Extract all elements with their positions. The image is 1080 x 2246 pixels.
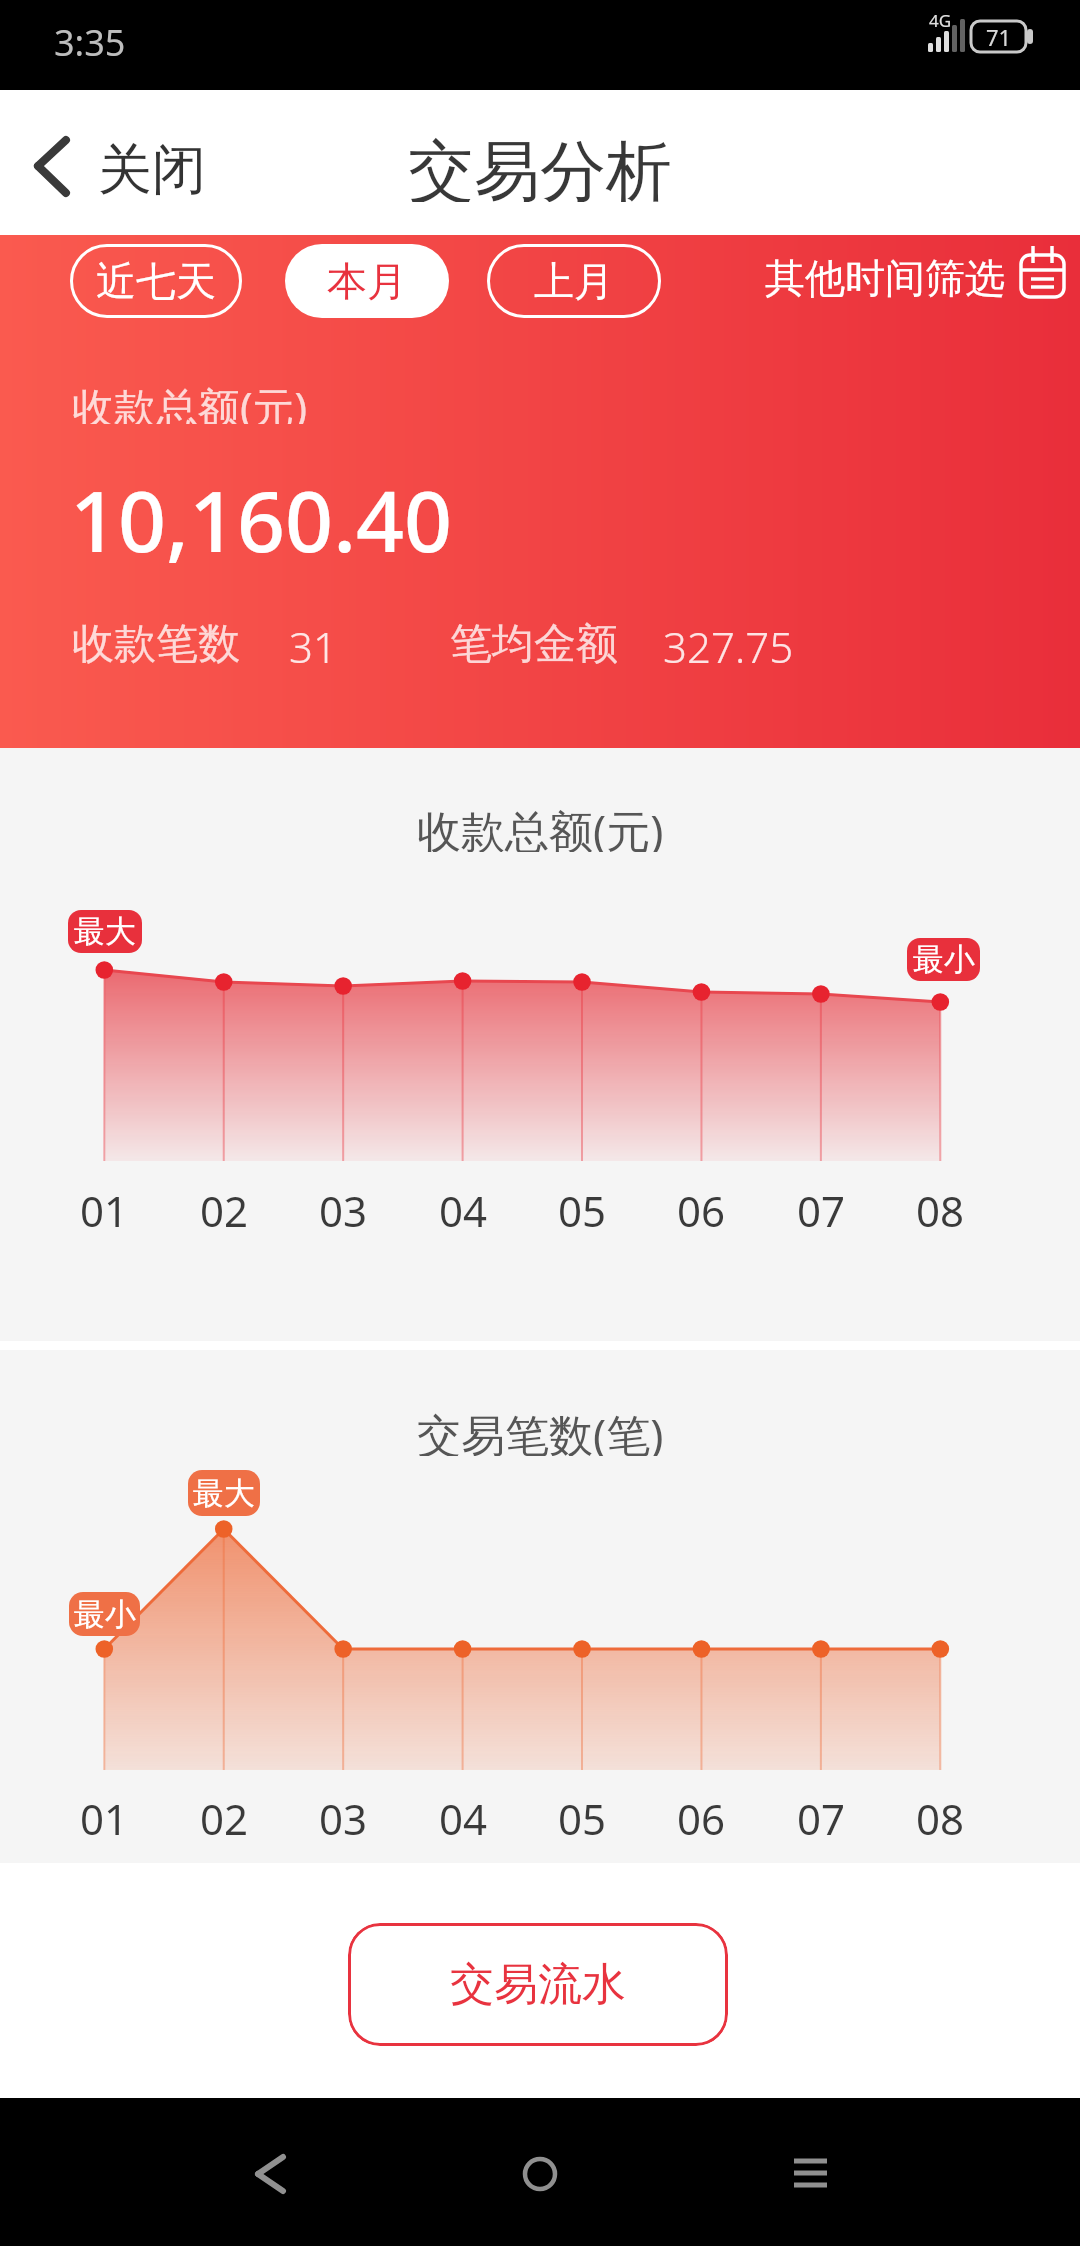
- staticText: 04: [439, 1790, 488, 1836]
- staticText: 08: [916, 1790, 965, 1836]
- button[interactable]: 上月: [487, 244, 661, 318]
- staticText: 4G: [929, 9, 952, 32]
- button[interactable]: 交易流水: [348, 1923, 728, 2046]
- staticText: 03: [319, 1790, 368, 1836]
- staticText: 327.75: [663, 618, 794, 666]
- staticText: 最大: [193, 1474, 255, 1513]
- staticText: 交易流水: [450, 1957, 626, 2012]
- staticText: 10,160.40: [70, 462, 453, 566]
- button[interactable]: [20, 120, 230, 215]
- staticText: 05: [558, 1182, 607, 1228]
- staticText: 31: [289, 618, 337, 666]
- staticText: 最小: [913, 940, 975, 979]
- staticText: 3:35: [54, 18, 126, 56]
- button[interactable]: 其他时间筛选: [765, 248, 1015, 308]
- button[interactable]: [480, 2120, 600, 2230]
- staticText: 收款总额(元): [72, 378, 308, 424]
- staticText: 05: [558, 1790, 607, 1836]
- staticText: 07: [797, 1182, 846, 1228]
- staticText: 最小: [74, 1595, 136, 1634]
- staticText: 交易分析: [408, 130, 672, 202]
- staticText: 07: [797, 1790, 846, 1836]
- staticText: 笔均金额: [450, 618, 618, 666]
- staticText: 收款笔数: [72, 618, 240, 666]
- staticText: 交易笔数(笔): [417, 1404, 664, 1456]
- staticText: 02: [200, 1182, 249, 1228]
- button[interactable]: [750, 2120, 870, 2230]
- staticText: 01: [80, 1182, 129, 1228]
- staticText: 01: [80, 1790, 129, 1836]
- staticText: 71: [986, 22, 1012, 52]
- staticText: 04: [439, 1182, 488, 1228]
- staticText: 08: [916, 1182, 965, 1228]
- staticText: 06: [677, 1182, 726, 1228]
- staticText: 近七天: [96, 256, 216, 306]
- button[interactable]: 近七天: [70, 244, 242, 318]
- staticText: 收款总额(元): [417, 800, 664, 852]
- staticText: 本月: [327, 256, 407, 306]
- button[interactable]: [210, 2120, 330, 2230]
- staticText: 上月: [534, 256, 614, 306]
- staticText: 06: [677, 1790, 726, 1836]
- staticText: 02: [200, 1790, 249, 1836]
- staticText: 最大: [74, 912, 136, 951]
- staticText: 关闭: [98, 136, 206, 196]
- staticText: 其他时间筛选: [765, 253, 1005, 303]
- staticText: 03: [319, 1182, 368, 1228]
- button[interactable]: 本月: [285, 244, 449, 318]
